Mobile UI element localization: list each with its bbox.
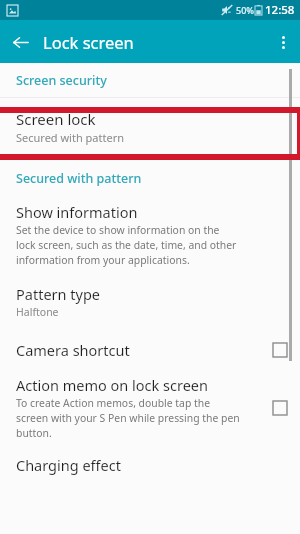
staticText: Charging effect bbox=[16, 455, 121, 475]
staticText: Set the device to show information on th… bbox=[16, 223, 237, 267]
staticText: To create Action memos, double tap the s… bbox=[16, 396, 240, 440]
button[interactable]: Action memo on lock screen bbox=[0, 370, 300, 448]
button[interactable]: Pattern type bbox=[0, 276, 300, 330]
staticText: Show information bbox=[16, 202, 138, 222]
button[interactable]: Toggle setting bbox=[264, 392, 296, 424]
button[interactable]: Screen lock bbox=[0, 98, 300, 159]
button[interactable]: Navigate up bbox=[4, 26, 36, 58]
staticText: Pattern type bbox=[16, 284, 100, 304]
staticText: Secured with pattern bbox=[16, 170, 142, 187]
staticText: Secured with pattern bbox=[16, 130, 125, 145]
staticText: Lock screen bbox=[43, 31, 134, 53]
button[interactable]: Charging effect bbox=[0, 448, 300, 485]
staticText: Camera shortcut bbox=[16, 340, 130, 360]
button[interactable]: Camera shortcut bbox=[0, 330, 300, 370]
button[interactable]: Show information bbox=[0, 196, 300, 276]
staticText: Action memo on lock screen bbox=[16, 375, 208, 395]
button[interactable]: More options bbox=[267, 26, 299, 58]
staticText: 12:58 bbox=[265, 2, 295, 18]
button[interactable]: Toggle setting bbox=[264, 334, 296, 366]
staticText: 50% bbox=[236, 4, 254, 16]
staticText: Screen security bbox=[16, 72, 107, 89]
staticText: Halftone bbox=[16, 305, 59, 319]
staticText: Screen lock bbox=[16, 109, 96, 129]
